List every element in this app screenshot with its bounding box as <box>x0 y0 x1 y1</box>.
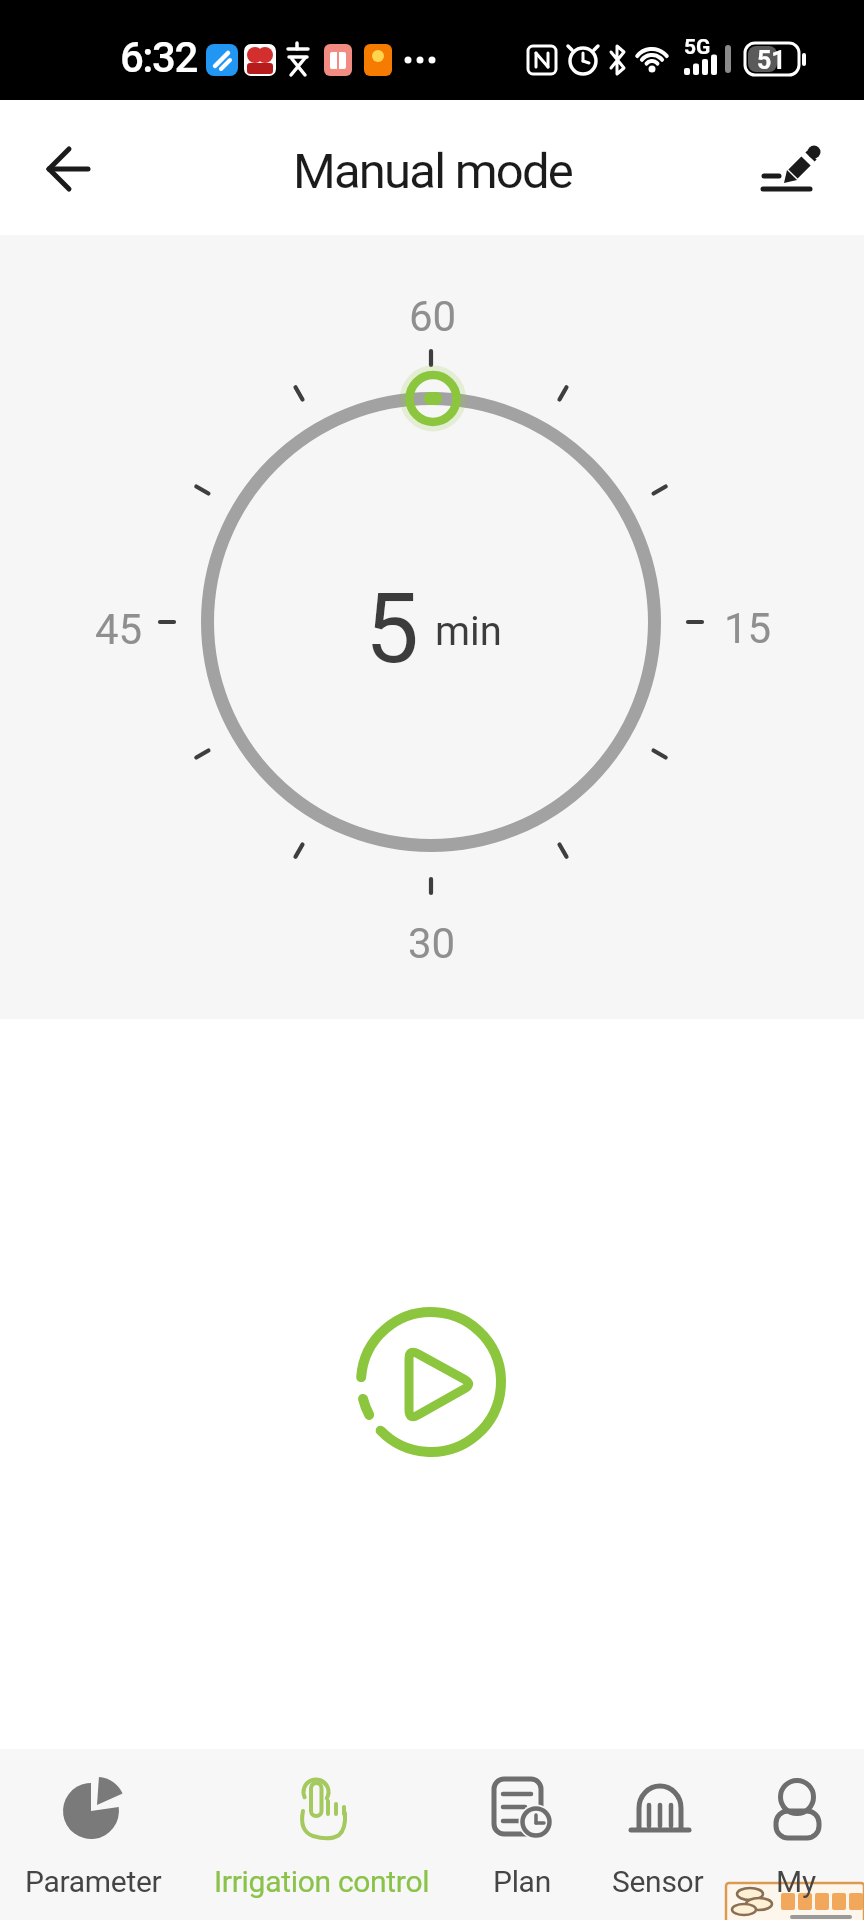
staticText: 15 <box>724 604 772 653</box>
staticText: 45 <box>95 605 143 654</box>
staticText: Sensor <box>612 1864 704 1899</box>
button[interactable]: My <box>656 1755 864 1915</box>
button[interactable] <box>740 130 835 205</box>
staticText: 6:32 <box>120 33 197 82</box>
button[interactable]: Irrigation control <box>182 1755 462 1915</box>
staticText: 30 <box>408 919 456 968</box>
staticText: Parameter <box>25 1864 162 1899</box>
staticText: 5G <box>684 35 711 60</box>
staticText: 60 <box>409 292 457 341</box>
button[interactable] <box>351 1302 511 1462</box>
staticText: 51 <box>757 46 786 75</box>
button[interactable]: Plan <box>382 1755 662 1915</box>
button[interactable] <box>20 135 110 205</box>
staticText: My <box>776 1864 816 1899</box>
staticText: Irrigation control <box>214 1864 430 1899</box>
staticText: Plan <box>493 1864 551 1899</box>
staticText: min <box>435 608 502 655</box>
button[interactable]: Sensor <box>518 1755 798 1915</box>
staticText: Manual mode <box>293 143 572 200</box>
staticText: 5 <box>365 573 419 686</box>
button[interactable]: Parameter <box>0 1755 233 1915</box>
